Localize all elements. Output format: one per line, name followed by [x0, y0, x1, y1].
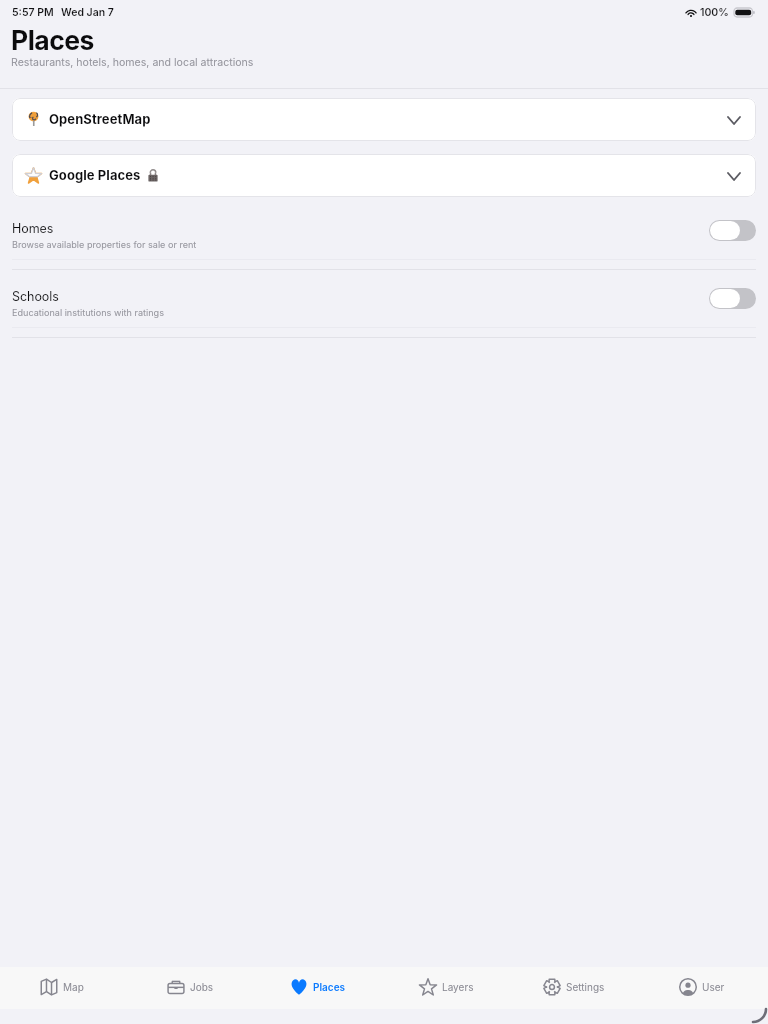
- button[interactable]: Layers: [384, 967, 512, 1009]
- button[interactable]: Google Places: [12, 154, 756, 197]
- button[interactable]: Homes: [0, 202, 768, 259]
- button[interactable]: Schools: [0, 270, 768, 327]
- button[interactable]: Places: [256, 967, 384, 1009]
- button[interactable]: Toggle Homes: [709, 220, 756, 241]
- staticText: Settings: [566, 981, 605, 993]
- staticText: 5:57 PM: [12, 6, 54, 19]
- staticText: OpenStreetMap: [49, 111, 151, 127]
- staticText: Wed Jan 7: [61, 6, 114, 19]
- other: Resize: [753, 1009, 766, 1022]
- other: Expand Google Places: [728, 173, 740, 180]
- staticText: Map: [63, 981, 84, 993]
- staticText: Restaurants, hotels, homes, and local at…: [11, 56, 254, 69]
- button[interactable]: Jobs: [128, 967, 256, 1009]
- staticText: Schools: [12, 289, 59, 304]
- button[interactable]: Toggle Schools: [709, 288, 756, 309]
- staticText: Educational institutions with ratings: [12, 307, 164, 318]
- button[interactable]: OpenStreetMap: [12, 98, 756, 141]
- staticText: Google Places: [49, 167, 141, 183]
- button[interactable]: Settings: [512, 967, 640, 1009]
- button[interactable]: User: [640, 967, 768, 1009]
- staticText: User: [702, 981, 725, 993]
- staticText: Places: [11, 24, 94, 56]
- staticText: 100%: [700, 6, 729, 19]
- staticText: Places: [313, 981, 346, 993]
- staticText: Homes: [12, 221, 54, 236]
- staticText: Layers: [442, 981, 474, 993]
- staticText: Browse available properties for sale or …: [12, 239, 197, 250]
- button[interactable]: Map: [0, 967, 128, 1009]
- other: Expand OpenStreetMap: [728, 117, 740, 124]
- staticText: Jobs: [190, 981, 214, 993]
